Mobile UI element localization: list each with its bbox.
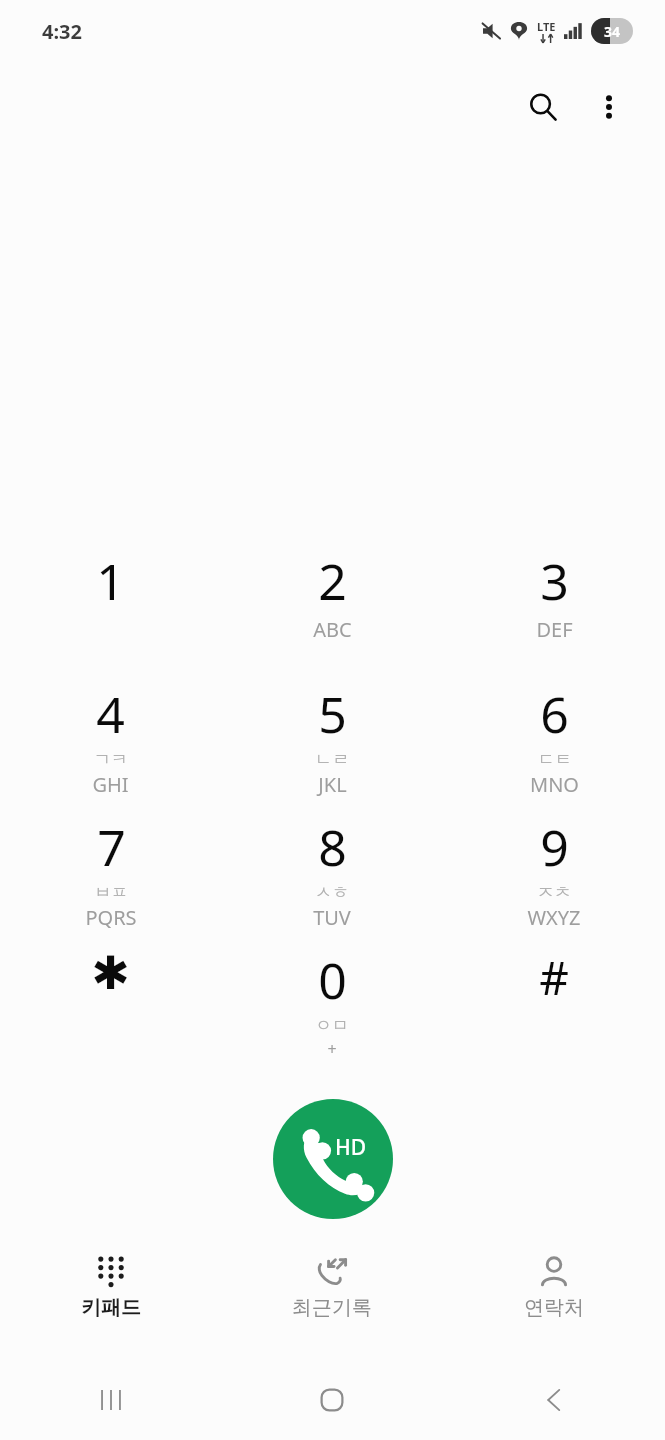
staticText: 2 — [318, 547, 347, 615]
button[interactable]: 9 — [443, 807, 665, 940]
button[interactable]: 8 — [221, 807, 443, 940]
button[interactable]: Search — [515, 79, 571, 135]
staticText: 1 — [96, 547, 125, 615]
button[interactable]: Back — [443, 1360, 665, 1440]
staticText: TUV — [313, 904, 351, 931]
button[interactable]: ✱ — [0, 940, 221, 1073]
button[interactable]: 1 — [0, 541, 221, 674]
staticText: ✱ — [91, 946, 130, 1000]
staticText: GHI — [92, 771, 129, 798]
button[interactable]: Home — [221, 1360, 443, 1440]
staticText: 34 — [604, 22, 621, 41]
staticText: HD — [335, 1133, 367, 1162]
staticText: ㅇㅁ — [315, 1015, 349, 1036]
staticText: ABC — [313, 616, 352, 643]
staticText: 3 — [540, 547, 569, 615]
staticText: ㄷㅌ — [538, 749, 572, 770]
staticText: ㅅㅎ — [315, 882, 349, 903]
staticText: ㄱㅋ — [94, 749, 128, 770]
button[interactable]: Recents — [0, 1360, 221, 1440]
button[interactable]: 연락처 — [443, 1255, 665, 1350]
button[interactable]: 7 — [0, 807, 221, 940]
staticText: WXYZ — [527, 904, 581, 931]
button[interactable]: 5 — [221, 674, 443, 807]
button[interactable]: 키패드 — [0, 1255, 221, 1350]
staticText: 6 — [540, 680, 569, 748]
button[interactable]: Call — [273, 1099, 393, 1219]
button[interactable]: 0 — [221, 940, 443, 1073]
staticText: 키패드 — [81, 1295, 141, 1320]
staticText: PQRS — [85, 904, 137, 931]
staticText: DEF — [536, 616, 573, 643]
staticText: 연락처 — [524, 1295, 584, 1320]
staticText: ㅈㅊ — [537, 882, 571, 903]
staticText: 7 — [97, 813, 126, 881]
staticText: 8 — [318, 813, 347, 881]
staticText: LTE — [537, 19, 556, 34]
staticText: JKL — [318, 771, 347, 798]
staticText: # — [539, 946, 569, 1009]
staticText: 4:32 — [42, 18, 82, 45]
staticText: 4 — [96, 680, 125, 748]
staticText: 최근기록 — [292, 1295, 372, 1320]
button[interactable]: 최근기록 — [221, 1255, 443, 1350]
staticText: 5 — [318, 680, 347, 748]
staticText: 9 — [540, 813, 569, 881]
button[interactable]: More options — [581, 79, 637, 135]
button[interactable]: 6 — [443, 674, 665, 807]
staticText: 0 — [318, 946, 347, 1014]
button[interactable]: 2 — [221, 541, 443, 674]
button[interactable]: 4 — [0, 674, 221, 807]
staticText: ㄴㄹ — [315, 749, 349, 770]
staticText: + — [327, 1038, 337, 1060]
staticText: MNO — [530, 771, 579, 798]
staticText: ㅂㅍ — [94, 882, 128, 903]
button[interactable]: # — [443, 940, 665, 1073]
button[interactable]: 3 — [443, 541, 665, 674]
